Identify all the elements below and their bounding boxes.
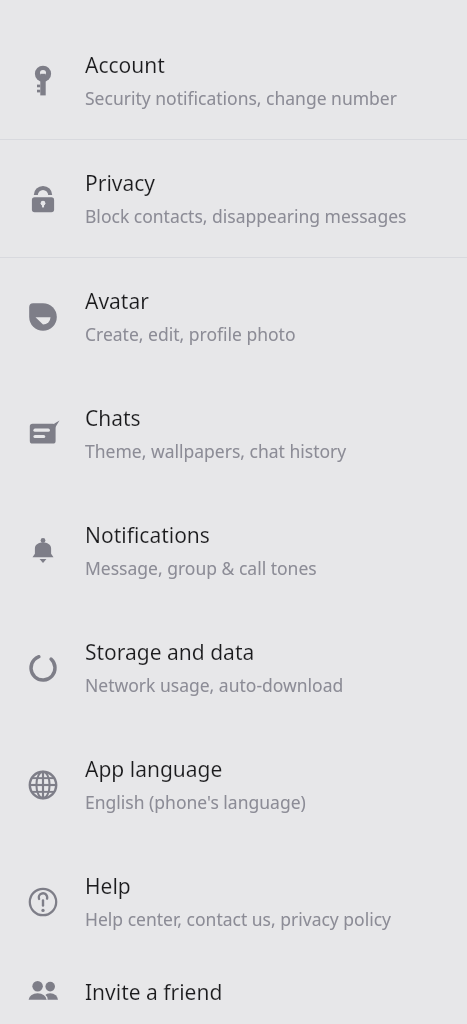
other: Invite a friend	[0, 960, 85, 1024]
staticText: Help	[85, 872, 131, 901]
other: App language	[0, 726, 85, 843]
staticText: Avatar	[85, 287, 149, 316]
other: Privacy	[0, 140, 85, 257]
staticText: Account	[85, 51, 165, 80]
staticText: Notifications	[85, 521, 210, 550]
button[interactable]: Chats	[0, 375, 467, 492]
other: Chats	[0, 375, 85, 492]
other: Account	[0, 22, 85, 139]
staticText: Privacy	[85, 169, 156, 198]
other: Storage and data	[0, 609, 85, 726]
button[interactable]: Storage and data	[0, 609, 467, 726]
button[interactable]: Invite a friend	[0, 960, 467, 1024]
button[interactable]: Account	[0, 22, 467, 139]
other: Help	[0, 843, 85, 960]
button[interactable]: Avatar	[0, 258, 467, 375]
button[interactable]: Notifications	[0, 492, 467, 609]
staticText: Invite a friend	[85, 978, 223, 1007]
staticText: App language	[85, 755, 223, 784]
button[interactable]: App language	[0, 726, 467, 843]
staticText: Help center, contact us, privacy policy	[85, 907, 392, 931]
staticText: Chats	[85, 404, 141, 433]
staticText: Block contacts, disappearing messages	[85, 204, 407, 228]
button[interactable]: Help	[0, 843, 467, 960]
staticText: Theme, wallpapers, chat history	[85, 439, 347, 463]
staticText: Create, edit, profile photo	[85, 322, 296, 346]
other: Notifications	[0, 492, 85, 609]
staticText: Message, group & call tones	[85, 556, 317, 580]
staticText: Security notifications, change number	[85, 86, 397, 110]
button[interactable]: Privacy	[0, 140, 467, 257]
staticText: Storage and data	[85, 638, 255, 667]
staticText: Network usage, auto-download	[85, 673, 344, 697]
staticText: English (phone's language)	[85, 790, 306, 814]
other: Avatar	[0, 258, 85, 375]
